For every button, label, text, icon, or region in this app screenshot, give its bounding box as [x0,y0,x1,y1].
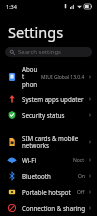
staticText: Bluetooth [22,172,75,180]
staticText: MIUI Global 13.0.4 [41,74,85,81]
staticText: Wi-Fi [22,156,70,164]
staticText: Settings [8,22,64,42]
other: Bluetooth [8,172,16,180]
staticText: About phone [22,65,38,89]
other: Portable hotspot [8,188,16,196]
staticText: 1:34 [6,3,17,10]
staticText: Off [77,189,85,196]
staticText: Noct [73,157,85,164]
staticText: Connection & sharing [22,204,85,212]
other: Connection and sharing [8,204,16,212]
other: System apps updater [8,95,16,103]
staticText: On [78,173,85,180]
button[interactable]: Portable hotspot [0,184,97,200]
staticText: Security status [22,111,85,119]
staticText: System apps updater [22,95,85,103]
other: SIM cards and mobile networks [8,138,16,146]
staticText: SIM cards & mobile networks [22,134,85,150]
button[interactable]: Wi-Fi [0,152,97,168]
button[interactable]: Security status [0,107,97,123]
other: Wi-Fi [8,156,16,164]
other: Security status [8,111,16,119]
button[interactable]: Bluetooth [0,168,97,184]
staticText: Portable hotspot [22,188,74,196]
button[interactable]: System apps updater [0,91,97,107]
other: About phone [8,73,16,81]
button[interactable]: Search settings [5,47,92,57]
button[interactable]: Connection and sharing [0,200,97,216]
staticText: Search settings [18,48,61,56]
button[interactable]: SIM cards and mobile networks [0,132,97,152]
button[interactable]: About phone [0,63,97,91]
